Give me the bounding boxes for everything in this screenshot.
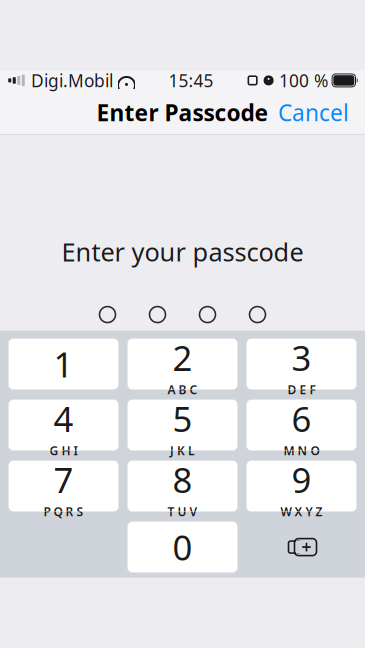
button[interactable]: 7	[8, 461, 118, 512]
button[interactable]: 0	[127, 522, 237, 573]
staticText: 5	[172, 396, 192, 442]
staticText: 15:45	[169, 69, 214, 92]
staticText: T U V	[167, 504, 197, 519]
staticText: Enter Passcode	[96, 97, 268, 127]
staticText: P Q R S	[43, 504, 83, 519]
staticText: Enter your passcode	[61, 235, 303, 268]
staticText: D E F	[287, 382, 315, 397]
staticText: W X Y Z	[280, 504, 322, 519]
staticText: 0	[172, 524, 192, 570]
staticText: 3	[291, 335, 311, 381]
staticText: 4	[53, 396, 73, 442]
staticText: J K L	[170, 443, 195, 458]
button[interactable]	[246, 522, 356, 573]
staticText: G H I	[49, 443, 77, 458]
staticText: Cancel	[278, 97, 349, 127]
staticText: A B C	[167, 382, 197, 397]
button[interactable]: 1	[8, 339, 118, 390]
staticText: 7	[53, 457, 73, 503]
staticText: Digi.Mobil	[31, 69, 113, 92]
button[interactable]: 5	[127, 400, 237, 451]
staticText: 6	[291, 396, 311, 442]
staticText: 2	[172, 335, 192, 381]
button[interactable]: 2	[127, 339, 237, 390]
button[interactable]: 9	[246, 461, 356, 512]
staticText: 100 %	[279, 69, 328, 92]
staticText: 1	[53, 341, 73, 387]
button[interactable]: 4	[8, 400, 118, 451]
staticText: 9	[291, 457, 311, 503]
button[interactable]: 8	[127, 461, 237, 512]
button[interactable]: 3	[246, 339, 356, 390]
staticText: M N O	[283, 443, 319, 458]
staticText: 8	[172, 457, 192, 503]
button[interactable]: Cancel	[268, 91, 359, 133]
button[interactable]: 6	[246, 400, 356, 451]
